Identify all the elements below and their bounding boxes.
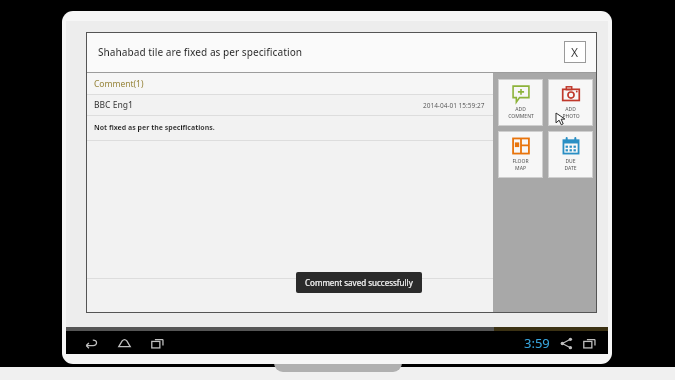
staticText: 3:59 [524,334,550,352]
staticText: Not fixed as per the specifications. [94,123,215,133]
staticText: Shahabad tile are fixed as per specifica… [98,45,303,59]
button[interactable]: Add comment [498,79,543,126]
button[interactable]: Add photo [548,79,593,126]
staticText: FLOOR [512,158,529,165]
button[interactable]: Share [558,335,574,351]
staticText: DUE [565,158,576,165]
button[interactable]: Recents [149,335,165,351]
staticText: PHOTO [562,113,580,120]
button[interactable]: Due date [548,131,593,178]
staticText: MAP [515,165,526,172]
staticText: Comment saved successfully [305,277,413,288]
button[interactable]: Back [83,335,99,351]
button[interactable]: Home [116,335,132,351]
staticText: BBC Eng1 [94,99,133,111]
staticText: 2014-04-01 15:59:27 [423,101,485,110]
button[interactable]: Close [564,41,586,63]
staticText: Comment(1) [94,78,144,90]
staticText: ADD [515,106,526,113]
staticText: X [571,44,579,60]
button[interactable]: Screenshot [581,335,597,351]
button[interactable]: Comment saved successfully [296,272,422,293]
button[interactable]: Floor map [498,131,543,178]
staticText: COMMENT [508,113,534,120]
staticText: ADD [565,106,576,113]
staticText: DATE [564,165,577,172]
